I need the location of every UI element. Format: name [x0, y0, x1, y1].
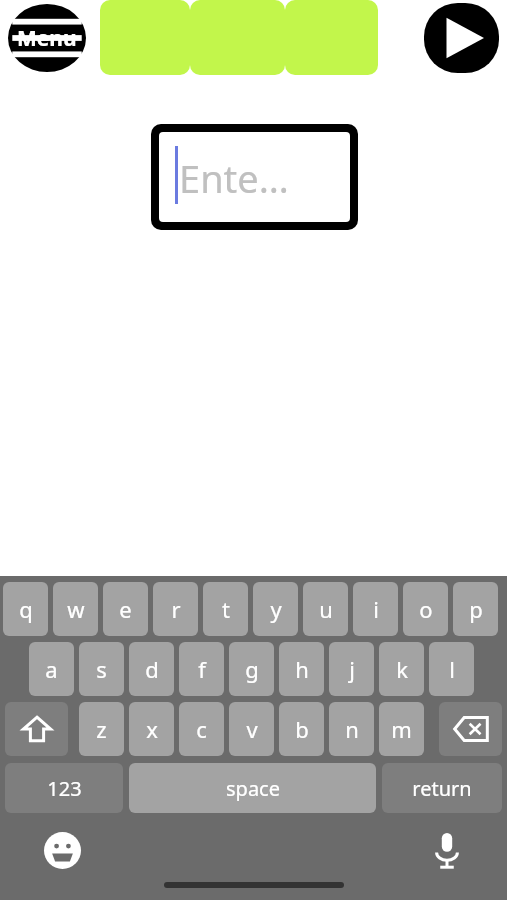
button[interactable]: g	[229, 642, 274, 696]
button[interactable]: Menu	[8, 4, 86, 72]
button[interactable]: b	[279, 702, 324, 756]
staticText: return	[412, 775, 472, 802]
staticText: a	[45, 654, 58, 684]
staticText: q	[19, 594, 33, 624]
staticText: z	[96, 714, 107, 744]
button[interactable]: Shift	[5, 702, 68, 756]
staticText: e	[119, 594, 132, 624]
button[interactable]: return	[382, 763, 502, 813]
staticText: c	[196, 714, 207, 744]
staticText: n	[345, 714, 359, 744]
button[interactable]: n	[329, 702, 374, 756]
staticText: m	[391, 714, 412, 744]
button[interactable]: l	[429, 642, 474, 696]
button[interactable]: q	[3, 582, 48, 636]
button[interactable]: z	[79, 702, 124, 756]
button[interactable]: 123	[5, 763, 123, 813]
staticText: u	[319, 594, 333, 624]
button[interactable]: s	[79, 642, 124, 696]
button[interactable]: Backspace	[439, 702, 502, 756]
button[interactable]: Play	[424, 3, 499, 73]
button[interactable]: t	[203, 582, 248, 636]
staticText: x	[146, 714, 158, 744]
button[interactable]: Voice input	[424, 828, 469, 873]
button[interactable]: c	[179, 702, 224, 756]
button[interactable]: Ente…	[151, 124, 358, 230]
staticText: h	[295, 654, 309, 684]
staticText: g	[245, 654, 259, 684]
staticText: k	[396, 654, 408, 684]
button[interactable]: j	[329, 642, 374, 696]
button[interactable]: Progress segments	[100, 0, 378, 75]
staticText: i	[373, 594, 379, 624]
staticText: j	[349, 654, 355, 684]
button[interactable]: space	[129, 763, 376, 813]
button[interactable]: d	[129, 642, 174, 696]
button[interactable]: p	[453, 582, 498, 636]
staticText: s	[96, 654, 107, 684]
button[interactable]: o	[403, 582, 448, 636]
button[interactable]: e	[103, 582, 148, 636]
button[interactable]: h	[279, 642, 324, 696]
button[interactable]: w	[53, 582, 98, 636]
staticText: p	[469, 594, 483, 624]
button[interactable]: v	[229, 702, 274, 756]
button[interactable]: i	[353, 582, 398, 636]
button[interactable]: m	[379, 702, 424, 756]
staticText: r	[171, 594, 181, 624]
staticText: l	[449, 654, 455, 684]
button[interactable]: a	[29, 642, 74, 696]
button[interactable]: f	[179, 642, 224, 696]
button[interactable]: r	[153, 582, 198, 636]
staticText: y	[270, 594, 282, 624]
button[interactable]: u	[303, 582, 348, 636]
staticText: space	[226, 775, 280, 802]
staticText: d	[145, 654, 159, 684]
staticText: t	[222, 594, 230, 624]
button[interactable]: Emoji	[40, 828, 85, 873]
staticText: w	[67, 594, 85, 624]
staticText: b	[295, 714, 309, 744]
staticText: f	[198, 654, 206, 684]
staticText: v	[246, 714, 258, 744]
staticText: o	[419, 594, 433, 624]
staticText: 123	[47, 775, 82, 802]
button[interactable]: k	[379, 642, 424, 696]
button[interactable]: y	[253, 582, 298, 636]
staticText: Ente…	[179, 152, 289, 202]
staticText: Menu	[17, 24, 77, 53]
button[interactable]: x	[129, 702, 174, 756]
